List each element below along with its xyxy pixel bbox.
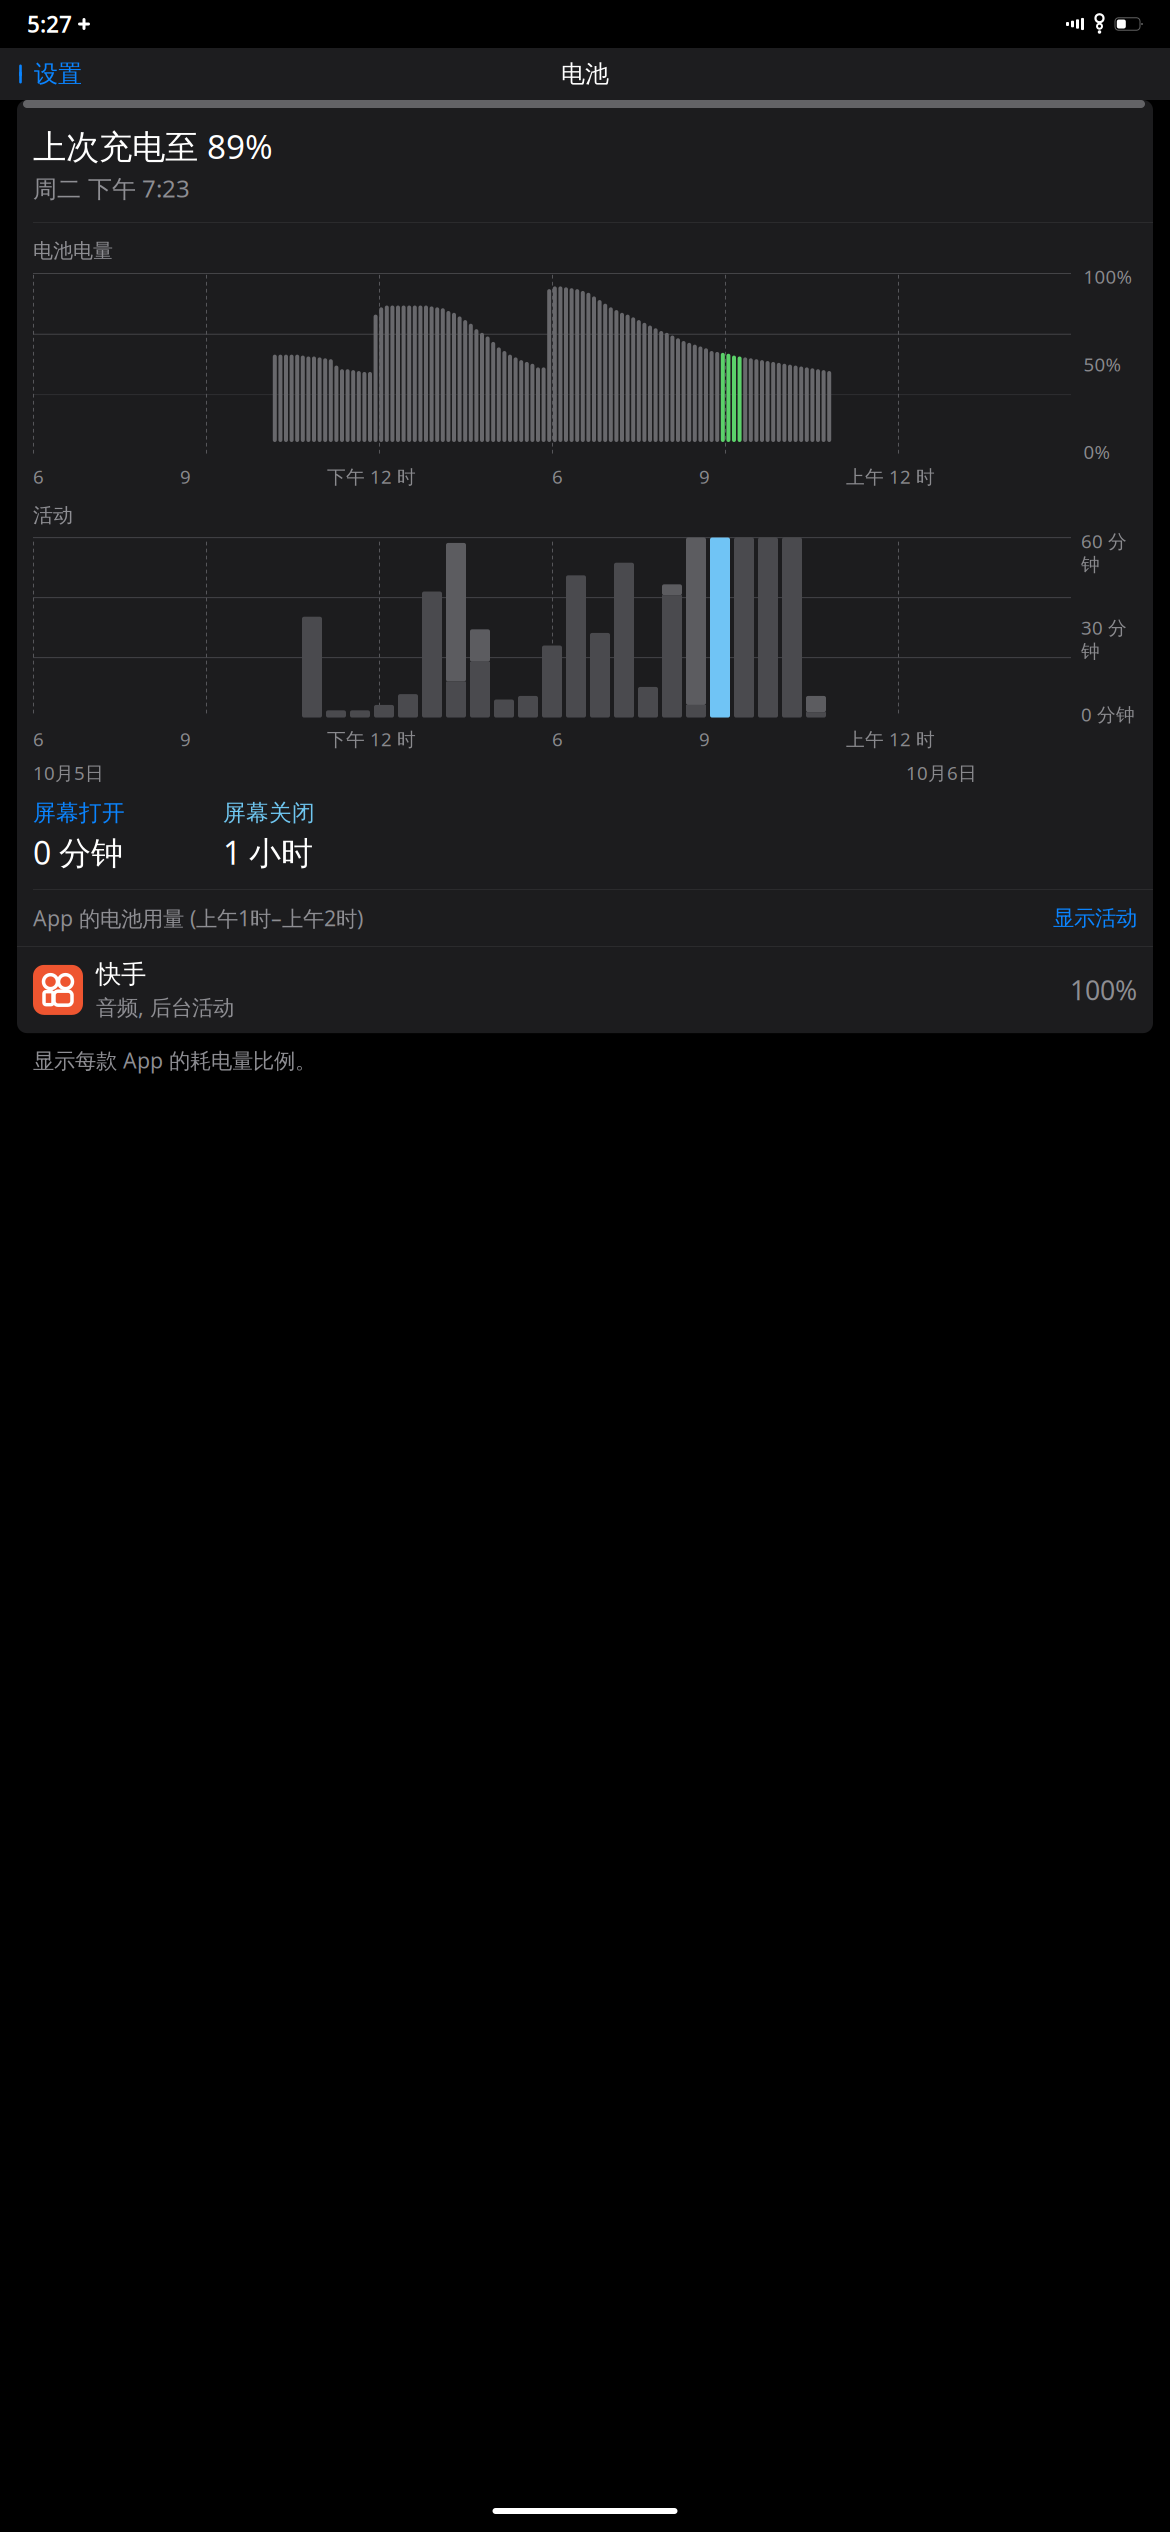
- staticText: 9: [180, 464, 191, 489]
- staticText: 上午 12 时: [846, 727, 935, 751]
- staticText: 周二 下午 7:23: [33, 172, 190, 204]
- staticText: 6: [552, 727, 563, 751]
- staticText: 9: [180, 727, 191, 751]
- button[interactable]: 设置: [4, 51, 82, 97]
- staticText: 上次充电至 89%: [33, 124, 273, 168]
- staticText: 10月6日: [906, 760, 977, 785]
- staticText: 9: [699, 464, 710, 489]
- staticText: 100%: [1083, 264, 1132, 289]
- staticText: 6: [552, 464, 563, 489]
- staticText: 60 分钟: [1081, 529, 1127, 576]
- staticText: 0 分钟: [33, 831, 123, 873]
- staticText: 50%: [1083, 352, 1121, 377]
- staticText: 上午 12 时: [846, 464, 935, 489]
- staticText: 下午 12 时: [327, 727, 416, 751]
- staticText: 30 分钟: [1081, 615, 1127, 663]
- staticText: 设置: [34, 59, 82, 89]
- staticText: 下午 12 时: [327, 464, 416, 489]
- staticText: 屏幕打开: [33, 799, 125, 827]
- staticText: 0 分钟: [1081, 702, 1135, 727]
- button[interactable]: 快手: [17, 947, 1153, 1033]
- staticText: 10月5日: [33, 760, 104, 785]
- staticText: 电池: [561, 59, 609, 89]
- staticText: 5:27: [27, 9, 72, 39]
- staticText: 电池电量: [33, 239, 113, 263]
- staticText: 屏幕关闭: [223, 799, 315, 827]
- staticText: 0%: [1083, 439, 1110, 464]
- staticText: App 的电池用量 (上午1时–上午2时): [33, 904, 363, 932]
- staticText: 活动: [33, 503, 73, 528]
- staticText: 音频, 后台活动: [96, 993, 234, 1021]
- staticText: 9: [699, 727, 710, 751]
- staticText: 显示每款 App 的耗电量比例。: [33, 1046, 316, 1074]
- staticText: 6: [33, 464, 44, 489]
- staticText: 100%: [1070, 972, 1137, 1008]
- staticText: 6: [33, 727, 44, 751]
- button[interactable]: 显示活动: [1043, 901, 1137, 935]
- staticText: 显示活动: [1053, 905, 1137, 931]
- staticText: 快手: [96, 959, 146, 990]
- staticText: 1 小时: [223, 831, 313, 873]
